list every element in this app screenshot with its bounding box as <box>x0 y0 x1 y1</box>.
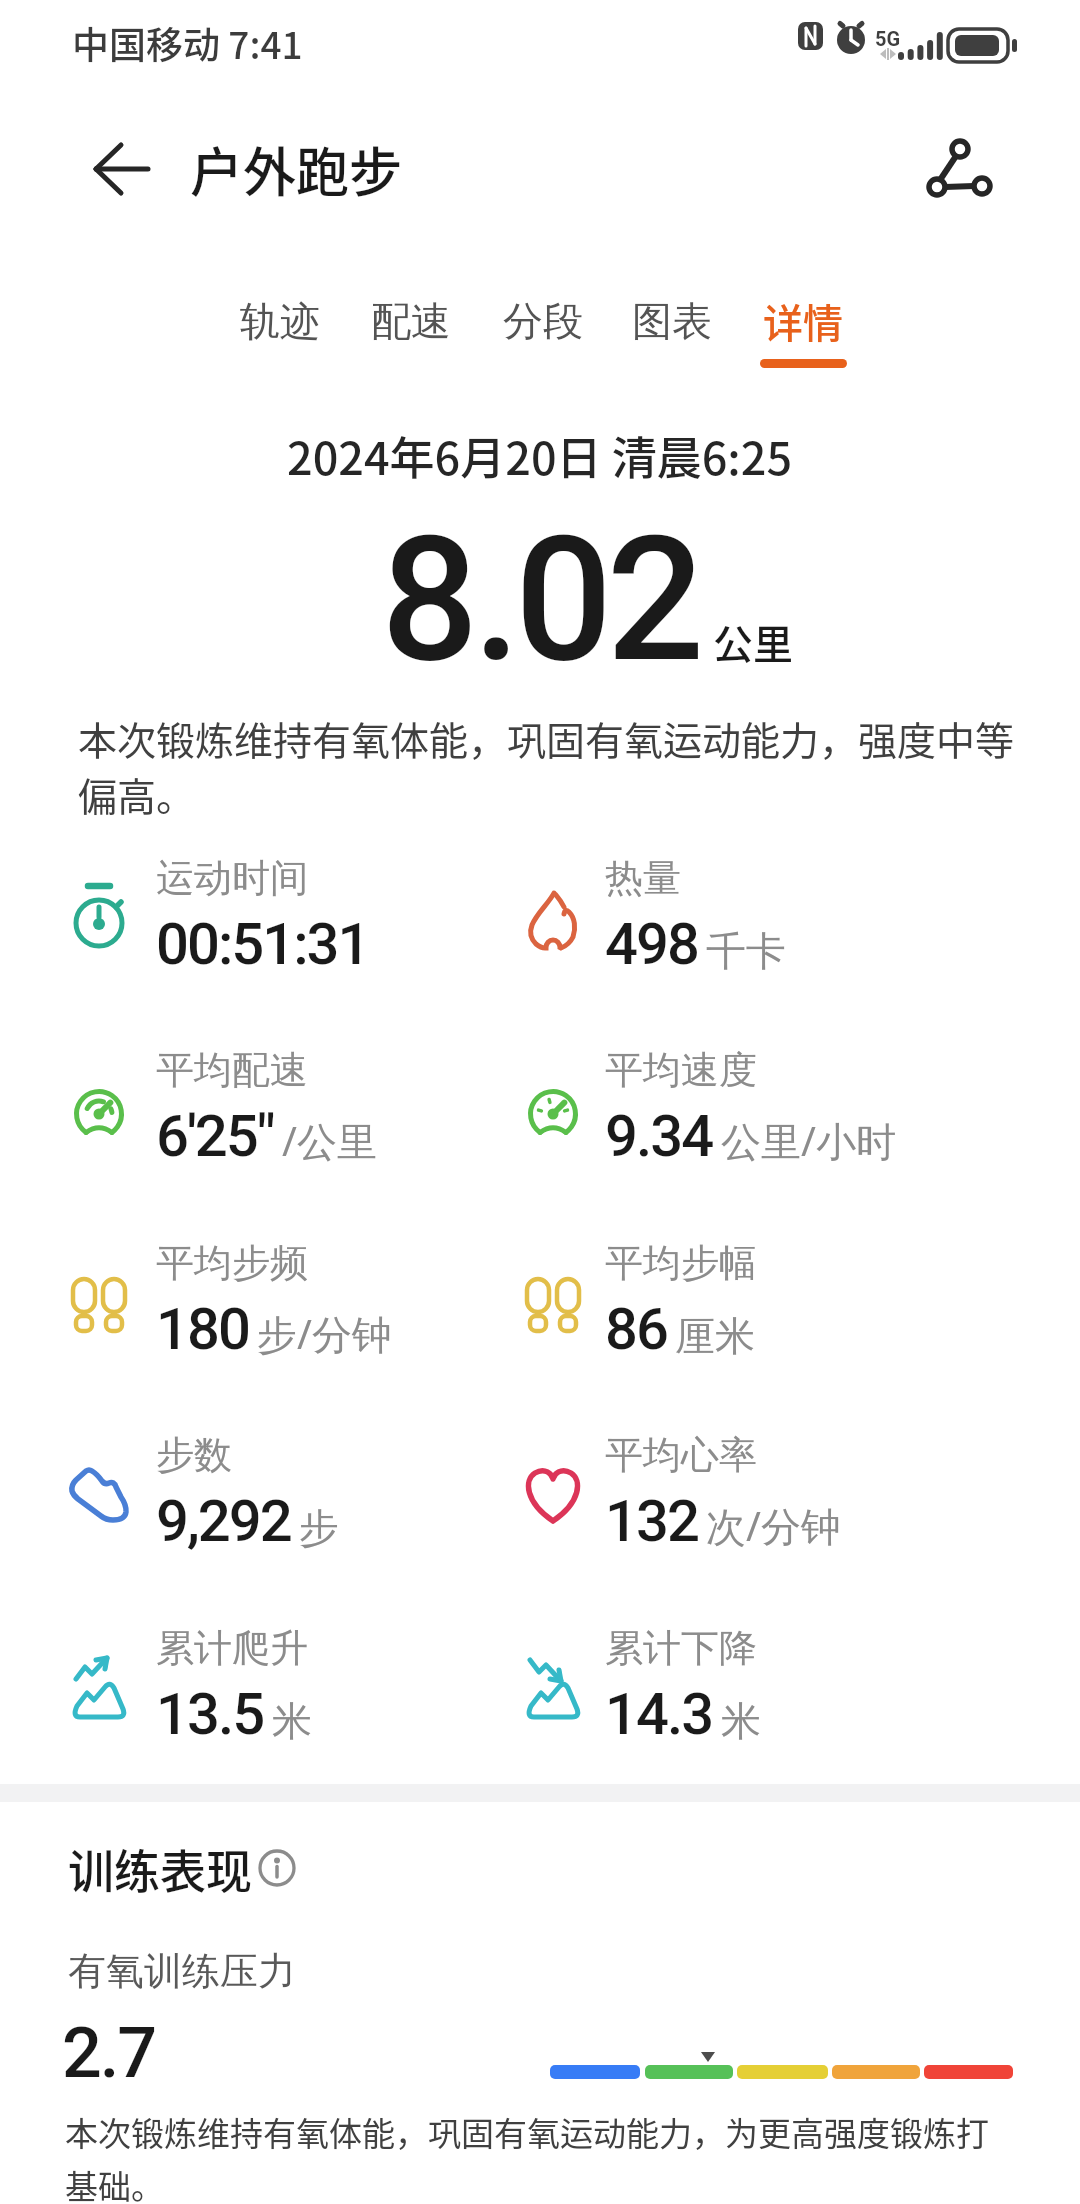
staticText: 米 <box>721 1696 761 1746</box>
staticText: 次/分钟 <box>706 1498 841 1553</box>
button[interactable] <box>227 1818 327 1918</box>
staticText: 千卡 <box>706 926 786 976</box>
button[interactable]: 图表 <box>610 290 734 352</box>
button[interactable]: 配速 <box>349 290 473 352</box>
staticText: 有氧训练压力 <box>68 1947 296 1995</box>
staticText: 平均步幅 <box>605 1239 757 1287</box>
staticText: 厘米 <box>675 1311 755 1361</box>
staticText: 运动时间 <box>156 854 308 902</box>
button[interactable] <box>915 130 1005 210</box>
staticText: 步数 <box>156 1431 232 1479</box>
staticText: 步/分钟 <box>257 1306 392 1361</box>
staticText: 平均配速 <box>156 1046 308 1094</box>
staticText: 户外跑步 <box>190 131 402 208</box>
staticText: 2.7 <box>62 2012 156 2094</box>
staticText: 公里/小时 <box>721 1113 896 1168</box>
staticText: 图表 <box>632 296 712 346</box>
staticText: 9.34 <box>605 1102 713 1170</box>
staticText: 00:51:31 <box>156 910 369 978</box>
staticText: 配速 <box>371 296 451 346</box>
staticText: 13.5 <box>156 1680 264 1748</box>
staticText: /公里 <box>282 1113 377 1168</box>
staticText: 5G <box>875 27 901 50</box>
staticText: 6'25" <box>156 1102 274 1170</box>
button[interactable] <box>80 135 170 205</box>
staticText: 详情 <box>763 292 843 350</box>
staticText: 本次锻炼维持有氧体能，巩固有氧运动能力，为更高强度锻炼打 基础。 <box>65 2108 989 2204</box>
staticText: 平均速度 <box>605 1046 757 1094</box>
staticText: 步 <box>299 1503 339 1553</box>
staticText: 中国移动 7:41 <box>72 16 303 70</box>
staticText: 14.3 <box>605 1680 713 1748</box>
button[interactable]: 分段 <box>481 290 605 352</box>
button[interactable]: 轨迹 <box>218 290 342 352</box>
staticText: 本次锻炼维持有氧体能，巩固有氧运动能力，强度中等 偏高。 <box>78 710 1015 822</box>
staticText: 累计爬升 <box>156 1624 308 1672</box>
staticText: 热量 <box>605 854 681 902</box>
staticText: 分段 <box>503 296 583 346</box>
staticText: 8.02 <box>381 499 699 701</box>
staticText: 平均步频 <box>156 1239 308 1287</box>
staticText: 132 <box>605 1487 698 1555</box>
staticText: 累计下降 <box>605 1624 757 1672</box>
staticText: 轨迹 <box>240 296 320 346</box>
staticText: 米 <box>272 1696 312 1746</box>
button[interactable]: 详情 <box>741 290 865 352</box>
staticText: 平均心率 <box>605 1431 757 1479</box>
staticText: 86 <box>605 1295 667 1363</box>
staticText: 498 <box>605 910 698 978</box>
staticText: 训练表现 <box>68 1835 252 1902</box>
staticText: 2024年6月20日 清晨6:25 <box>287 423 793 488</box>
staticText: 9,292 <box>156 1487 291 1555</box>
staticText: 180 <box>156 1295 249 1363</box>
staticText: 公里 <box>713 613 793 671</box>
